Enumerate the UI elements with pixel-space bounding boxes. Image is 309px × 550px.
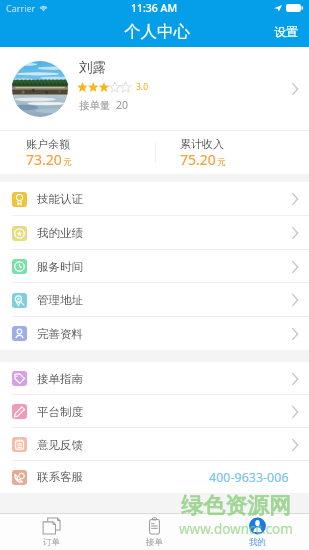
button[interactable]: 累计收入 — [154, 131, 309, 174]
staticText: 设置 — [274, 24, 298, 39]
staticText: 400-9633-006 — [209, 469, 289, 486]
staticText: 服务时间 — [37, 260, 83, 274]
staticText: www.downcc.com — [179, 520, 293, 538]
staticText: 我的业绩 — [37, 226, 83, 240]
staticText: 账户余额 — [26, 137, 70, 151]
button[interactable]: 我的 — [206, 514, 309, 550]
staticText: 元 — [63, 157, 72, 168]
staticText: 接单指南 — [37, 372, 83, 386]
button[interactable]: 服务时间 — [0, 250, 309, 283]
staticText: 11:36 AM — [131, 1, 178, 15]
button[interactable]: 接单指南 — [0, 362, 309, 395]
staticText: 联系客服 — [37, 470, 83, 484]
staticText: 元 — [217, 157, 226, 168]
staticText: 管理地址 — [37, 293, 83, 307]
staticText: 我的 — [249, 537, 266, 548]
staticText: 接单 — [146, 537, 163, 548]
button[interactable]: 联系客服 — [0, 461, 309, 493]
staticText: 绿色资源网 — [181, 492, 291, 520]
button[interactable]: 平台制度 — [0, 395, 309, 428]
button[interactable]: 技能认证 — [0, 182, 309, 216]
button[interactable]: 账户余额 — [0, 131, 154, 174]
staticText: 接单量 20 — [79, 98, 128, 112]
button[interactable]: 完善资料 — [0, 317, 309, 350]
staticText: 刘露 — [79, 59, 106, 76]
staticText: 技能认证 — [37, 192, 83, 206]
button[interactable]: 我的业绩 — [0, 216, 309, 250]
staticText: 完善资料 — [37, 327, 83, 341]
staticText: 个人中心 — [124, 21, 190, 42]
button[interactable]: 管理地址 — [0, 283, 309, 317]
staticText: Carrier — [6, 2, 36, 14]
staticText: 73.20 — [26, 150, 62, 169]
button[interactable]: 订单 — [0, 514, 103, 550]
staticText: 75.20 — [180, 150, 216, 169]
staticText: 累计收入 — [180, 137, 224, 151]
button[interactable]: 意见反馈 — [0, 428, 309, 461]
staticText: 3.0 — [136, 81, 149, 93]
staticText: 订单 — [43, 537, 60, 548]
button[interactable]: 设置 — [263, 19, 309, 44]
button[interactable]: 刘露 — [0, 47, 309, 130]
staticText: 平台制度 — [37, 405, 83, 419]
staticText: 意见反馈 — [37, 438, 83, 452]
button[interactable]: 接单 — [103, 514, 206, 550]
